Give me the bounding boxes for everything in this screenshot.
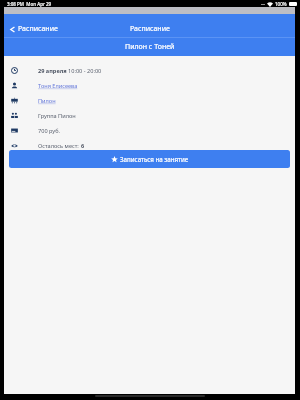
staticText: Записаться на занятие [120, 155, 189, 163]
staticText: Группа Пилон [38, 112, 76, 120]
staticText: Расписание [130, 24, 170, 34]
staticText: 6 [81, 142, 85, 150]
staticText: Пилон с Тоней [125, 42, 175, 52]
staticText: Осталось мест: [38, 142, 81, 150]
staticText: Расписание [18, 24, 58, 34]
other: Back [9, 26, 16, 33]
staticText: 100% [275, 1, 287, 7]
staticText: 3:08 PM Mon Apr 29 [7, 1, 52, 7]
button[interactable]: Back [4, 20, 63, 38]
button[interactable]: Записаться на занятие [9, 150, 290, 168]
staticText: Тоня Елисеева [38, 82, 78, 90]
staticText: 700 руб. [38, 127, 60, 135]
staticText: 10:00 - 20:00 [68, 67, 102, 75]
staticText: Пилон [38, 97, 56, 105]
staticText: 29 апреля [38, 67, 68, 75]
